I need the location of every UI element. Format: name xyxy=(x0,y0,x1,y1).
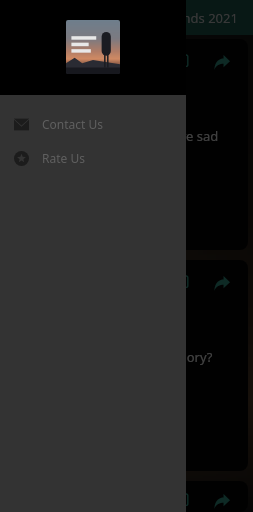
button[interactable]: Copy xyxy=(5,260,248,471)
staticText: Rate Us xyxy=(42,150,85,166)
staticText: Contact Us xyxy=(42,116,104,132)
button[interactable]: Questions To Ask Friends 2021 xyxy=(0,0,253,35)
button[interactable]: Share xyxy=(208,491,234,512)
button[interactable]: Copy xyxy=(168,49,194,75)
button[interactable]: Copy xyxy=(168,491,194,512)
button[interactable]: Copy xyxy=(5,39,248,250)
button[interactable]: Contact Us xyxy=(0,107,186,141)
staticText: What do you do when you're sad xyxy=(19,127,219,145)
button[interactable]: Share xyxy=(208,270,234,296)
button[interactable]: Copy xyxy=(168,270,194,296)
staticText: What is your happiest memory? xyxy=(19,348,213,366)
button[interactable]: Share xyxy=(208,49,234,75)
button[interactable]: Copy xyxy=(5,481,248,512)
staticText: Questions To Ask Friends 2021 xyxy=(52,9,238,27)
button[interactable] xyxy=(0,0,186,95)
button[interactable]: Rate Us xyxy=(0,141,186,175)
